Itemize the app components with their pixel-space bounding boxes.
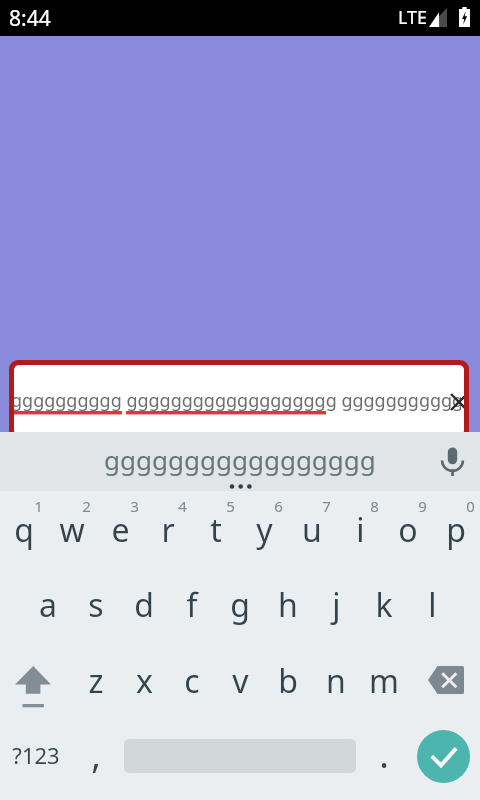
staticText: b (278, 659, 298, 703)
button[interactable]: Clear text (451, 394, 464, 410)
button[interactable]: Enter (417, 730, 470, 783)
staticText: . (379, 730, 389, 778)
staticText: v (232, 659, 249, 703)
staticText: gggggggggg ggggggggggggggggggg ggggggggg… (14, 388, 461, 413)
button[interactable]: Voice input (428, 446, 477, 478)
button[interactable]: 9 (398, 482, 446, 530)
button[interactable]: 7 (302, 482, 350, 530)
staticText: l (428, 583, 437, 627)
staticText: z (88, 659, 104, 703)
button[interactable]: n (312, 657, 360, 705)
staticText: 8 (370, 496, 379, 516)
button[interactable]: t (192, 506, 240, 554)
button[interactable]: j (312, 581, 360, 629)
button[interactable]: x (120, 657, 168, 705)
button[interactable]: c (168, 657, 216, 705)
button[interactable]: u (288, 506, 336, 554)
staticText: w (59, 508, 85, 552)
staticText: 4 (178, 496, 187, 516)
staticText: 6 (274, 496, 283, 516)
button[interactable]: a (24, 581, 72, 629)
staticText: 3 (130, 496, 139, 516)
staticText: LTE (398, 5, 428, 30)
staticText: p (446, 508, 466, 552)
staticText: j (332, 583, 341, 627)
button[interactable]: gggggggggg ggggggggggggggggggg ggggggggg… (9, 360, 469, 440)
button[interactable]: 1 (14, 482, 62, 530)
button[interactable]: 3 (110, 482, 158, 530)
staticText: , (91, 730, 101, 778)
staticText: m (369, 659, 399, 703)
staticText: 2 (82, 496, 91, 516)
button[interactable]: Shift (0, 646, 72, 712)
button[interactable]: f (168, 581, 216, 629)
staticText: ?123 (12, 740, 60, 770)
button[interactable]: p (432, 506, 480, 554)
staticText: y (256, 508, 273, 552)
button[interactable]: m (360, 657, 408, 705)
button[interactable]: o (384, 506, 432, 554)
staticText: s (88, 583, 104, 627)
staticText: r (161, 508, 175, 552)
button[interactable]: g (216, 581, 264, 629)
staticText: d (134, 583, 154, 627)
button[interactable]: 8 (350, 482, 398, 530)
button[interactable]: ?123 (12, 731, 60, 779)
button[interactable]: w (48, 506, 96, 554)
button[interactable]: ggggggggggggggggg (104, 442, 376, 477)
button[interactable]: h (264, 581, 312, 629)
button[interactable]: i (336, 506, 384, 554)
staticText: h (278, 583, 298, 627)
button[interactable]: d (120, 581, 168, 629)
staticText: 5 (226, 496, 235, 516)
staticText: u (302, 508, 322, 552)
button[interactable]: s (72, 581, 120, 629)
button[interactable]: , (72, 730, 120, 778)
staticText: ggggggggggggggggg (104, 442, 376, 477)
staticText: g (230, 583, 250, 627)
button[interactable]: Backspace (408, 646, 480, 712)
staticText: k (375, 583, 393, 627)
button[interactable]: 0 (446, 482, 480, 530)
staticText: x (136, 659, 153, 703)
staticText: a (39, 583, 57, 627)
staticText: f (186, 583, 198, 627)
button[interactable]: v (216, 657, 264, 705)
button[interactable]: z (72, 657, 120, 705)
button[interactable]: y (240, 506, 288, 554)
button[interactable]: 5 (206, 482, 254, 530)
button[interactable]: k (360, 581, 408, 629)
button[interactable]: 2 (62, 482, 110, 530)
button[interactable]: 6 (254, 482, 302, 530)
staticText: n (326, 659, 346, 703)
staticText: 0 (466, 496, 475, 516)
button[interactable]: q (0, 506, 48, 554)
staticText: i (356, 508, 365, 552)
staticText: 1 (34, 496, 43, 516)
staticText: o (398, 508, 418, 552)
staticText: 7 (322, 496, 331, 516)
button[interactable]: . (360, 730, 408, 778)
button[interactable]: 4 (158, 482, 206, 530)
staticText: q (14, 508, 34, 552)
staticText: 8:44 (9, 4, 51, 33)
staticText: c (184, 659, 200, 703)
staticText: e (111, 508, 130, 552)
button[interactable]: l (408, 581, 456, 629)
staticText: t (210, 508, 222, 552)
staticText: 9 (418, 496, 427, 516)
button[interactable]: b (264, 657, 312, 705)
button[interactable]: r (144, 506, 192, 554)
button[interactable]: e (96, 506, 144, 554)
